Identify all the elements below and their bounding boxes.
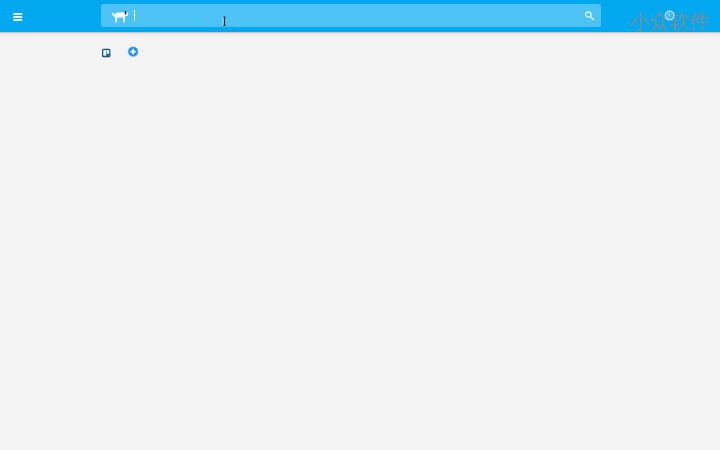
button[interactable]: New [126,45,141,60]
button[interactable]: Help [662,8,678,24]
staticText: ? [667,10,671,20]
button[interactable]: Menu [5,4,30,28]
button[interactable]: Boards [99,45,114,60]
staticText: 小众软件 [630,9,714,34]
button[interactable]: Search [101,4,601,27]
button[interactable]: Search [580,6,597,23]
